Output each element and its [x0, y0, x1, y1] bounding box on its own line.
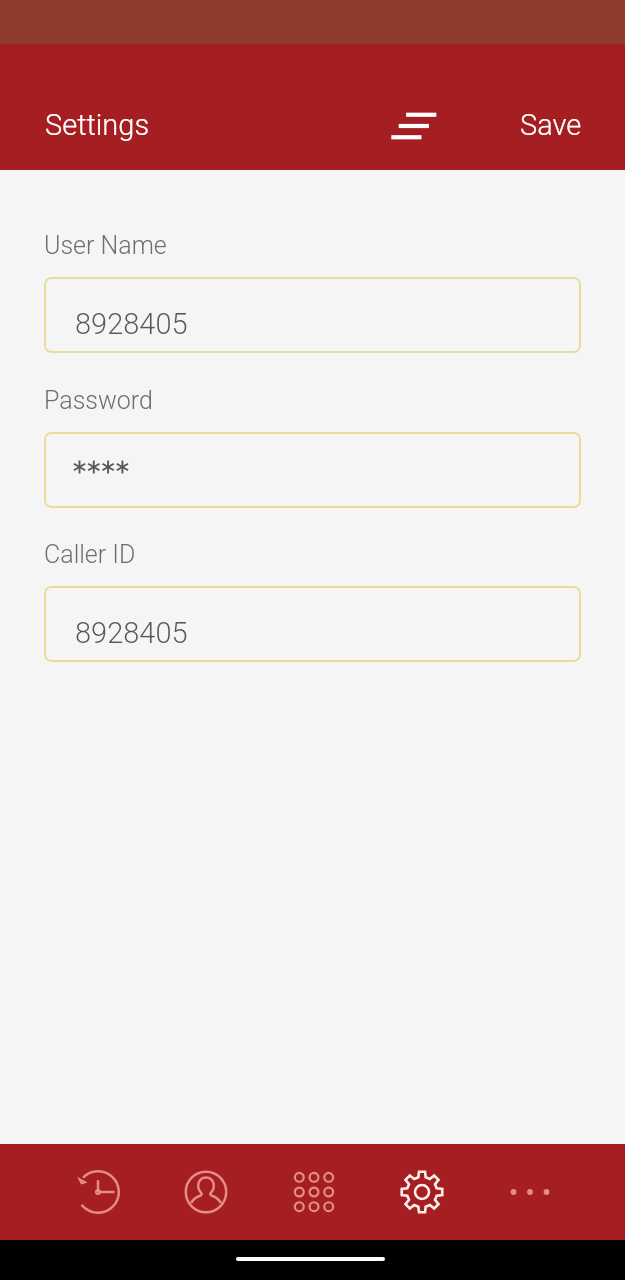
staticText: Save: [520, 108, 582, 142]
staticText: User Name: [44, 231, 167, 260]
staticText: Settings: [45, 108, 150, 142]
button[interactable]: Sort: [382, 100, 446, 152]
staticText: Caller ID: [44, 540, 136, 569]
button[interactable]: [44, 432, 581, 508]
button[interactable]: Recent calls: [44, 1144, 152, 1240]
button[interactable]: Save: [500, 94, 602, 156]
staticText: Password: [44, 386, 153, 415]
button[interactable]: 8928405: [44, 586, 581, 662]
button[interactable]: Settings: [368, 1144, 476, 1240]
button[interactable]: More: [476, 1144, 584, 1240]
button[interactable]: Keypad: [260, 1144, 368, 1240]
button[interactable]: Contacts: [152, 1144, 260, 1240]
button[interactable]: 8928405: [44, 277, 581, 353]
staticText: 8928405: [75, 307, 188, 341]
staticText: 8928405: [75, 616, 188, 650]
